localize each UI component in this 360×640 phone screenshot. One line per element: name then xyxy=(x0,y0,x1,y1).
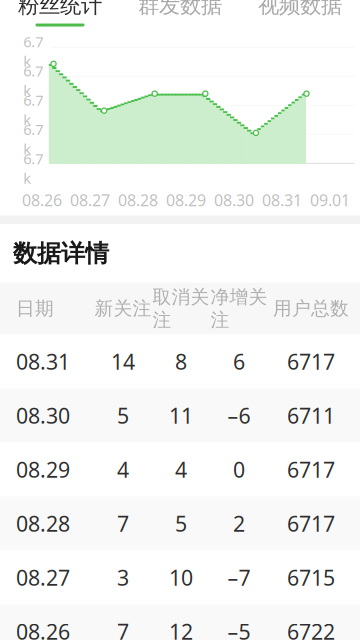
staticText: 新关注 xyxy=(94,297,151,320)
staticText: 6717 xyxy=(287,509,335,538)
button[interactable]: 视频数据 xyxy=(240,0,360,30)
staticText: 08.28 xyxy=(16,509,70,538)
staticText: 11 xyxy=(169,401,193,430)
button[interactable]: 群发数据 xyxy=(120,0,240,30)
staticText: 10 xyxy=(169,563,193,592)
staticText: 08.31 xyxy=(262,189,302,211)
staticText: 08.27 xyxy=(16,563,70,592)
staticText: 08.28 xyxy=(118,189,158,211)
staticText: 3 xyxy=(117,563,129,592)
staticText: 08.26 xyxy=(22,189,62,211)
staticText: –7 xyxy=(227,563,250,592)
staticText: 09.01 xyxy=(310,189,350,211)
staticText: 08.31 xyxy=(16,347,70,376)
staticText: 14 xyxy=(111,347,135,376)
staticText: 4 xyxy=(117,455,129,484)
staticText: 08.29 xyxy=(166,189,206,211)
staticText: 08.26 xyxy=(16,617,70,640)
staticText: 6715 xyxy=(287,563,335,592)
staticText: 日期 xyxy=(16,297,54,320)
staticText: 8 xyxy=(175,347,187,376)
staticText: 6717 xyxy=(287,455,335,484)
staticText: 4 xyxy=(175,455,187,484)
staticText: 6.7k xyxy=(23,61,43,100)
staticText: 08.30 xyxy=(214,189,254,211)
staticText: 数据详情 xyxy=(13,239,109,268)
staticText: 6717 xyxy=(287,347,335,376)
staticText: 净增关注 xyxy=(210,286,267,331)
staticText: 08.27 xyxy=(70,189,110,211)
staticText: 12 xyxy=(169,617,193,640)
staticText: 视频数据 xyxy=(258,0,342,19)
staticText: 08.29 xyxy=(16,455,70,484)
staticText: 6722 xyxy=(287,617,335,640)
staticText: 2 xyxy=(233,509,245,538)
button[interactable]: 粉丝统计 xyxy=(0,0,120,30)
staticText: 08.30 xyxy=(16,401,70,430)
staticText: 6 xyxy=(233,347,245,376)
staticText: –6 xyxy=(227,401,250,430)
staticText: 6.7k xyxy=(23,90,43,129)
staticText: 取消关注 xyxy=(152,286,209,331)
staticText: –5 xyxy=(227,617,250,640)
staticText: 7 xyxy=(117,617,129,640)
staticText: 5 xyxy=(117,401,129,430)
staticText: 6711 xyxy=(287,401,335,430)
staticText: 粉丝统计 xyxy=(18,0,102,19)
staticText: 6.7k xyxy=(23,149,43,188)
staticText: 0 xyxy=(233,455,245,484)
staticText: 5 xyxy=(175,509,187,538)
staticText: 6.7k xyxy=(23,120,43,159)
staticText: 用户总数 xyxy=(273,297,349,320)
staticText: 7 xyxy=(117,509,129,538)
staticText: 群发数据 xyxy=(138,0,222,19)
staticText: 6.7k xyxy=(23,32,43,71)
